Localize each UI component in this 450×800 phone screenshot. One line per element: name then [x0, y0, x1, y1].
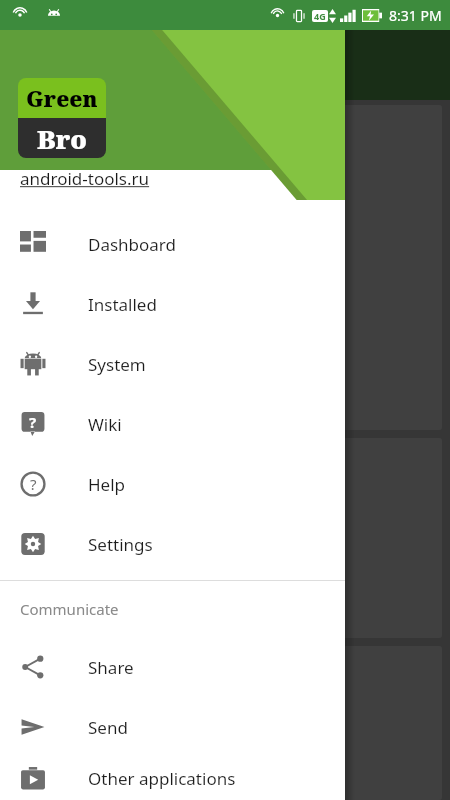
staticText: System	[88, 353, 146, 376]
button[interactable]: Settings	[0, 514, 345, 574]
button[interactable]: ?	[0, 394, 345, 454]
staticText: Bro	[37, 121, 87, 156]
staticText: Share	[88, 656, 134, 679]
staticText: Installed	[88, 293, 157, 316]
staticText: Other applications	[88, 767, 236, 790]
staticText: Help	[88, 473, 126, 496]
staticText: ?	[30, 474, 37, 494]
staticText: Communicate	[20, 599, 119, 619]
staticText: Wiki	[88, 413, 122, 436]
button[interactable]: Share	[0, 637, 345, 697]
button[interactable]: Other applications	[0, 757, 345, 800]
staticText: Dashboard	[88, 233, 177, 256]
staticText: android-tools.ru	[20, 167, 150, 190]
staticText: Green	[26, 83, 98, 113]
button[interactable]: Dashboard	[0, 214, 345, 274]
staticText: Send	[88, 716, 128, 739]
staticText: 4G	[314, 10, 326, 22]
staticText: 8:31 PM	[389, 6, 442, 25]
button[interactable]: android-tools.ru	[20, 167, 150, 190]
button[interactable]: ?	[0, 454, 345, 514]
staticText: Build	[38, 328, 91, 358]
staticText: ?	[29, 412, 37, 432]
button[interactable]: Installed	[0, 274, 345, 334]
staticText: Settings	[88, 533, 153, 556]
button[interactable]: Send	[0, 697, 345, 757]
button[interactable]: System	[0, 334, 345, 394]
